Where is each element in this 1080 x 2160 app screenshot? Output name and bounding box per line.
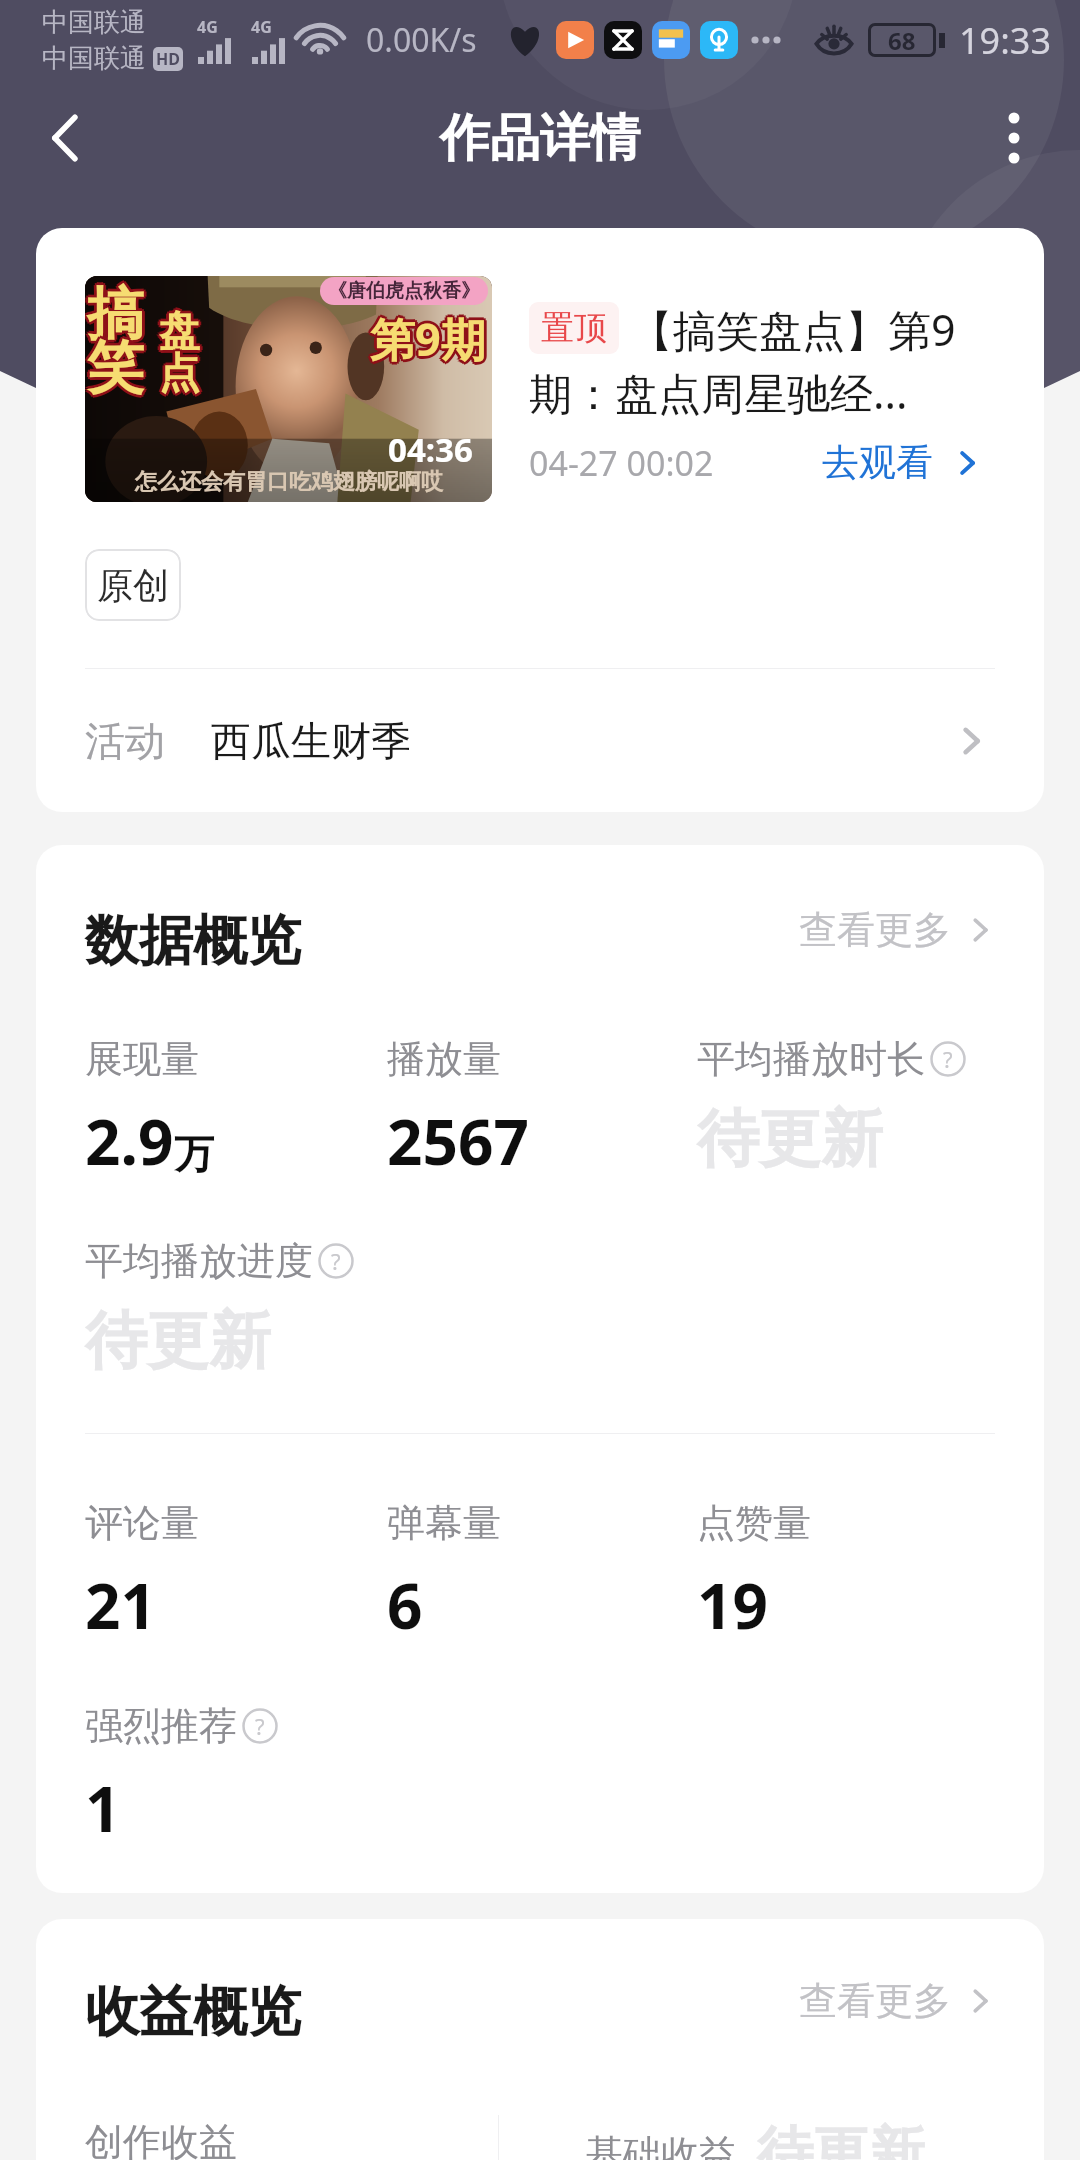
- staticText: 《唐伯虎点秋香》: [328, 279, 480, 303]
- staticText: 第9期: [367, 308, 483, 369]
- staticText: 2.9: [85, 1099, 174, 1183]
- staticText: 笑: [85, 332, 141, 404]
- staticText: 笑: [87, 335, 144, 407]
- staticText: 点: [159, 345, 200, 397]
- staticText: 4G: [197, 16, 218, 38]
- staticText: 中国联通: [42, 6, 146, 39]
- button[interactable]: 去观看: [822, 439, 982, 486]
- staticText: 平均播放进度: [85, 1237, 313, 1285]
- staticText: 笑: [89, 334, 146, 406]
- staticText: 搞: [87, 276, 144, 347]
- staticText: 点: [161, 346, 202, 398]
- staticText: 搞: [89, 280, 146, 352]
- staticText: 第9期: [372, 310, 488, 371]
- staticText: 去观看: [822, 439, 933, 486]
- staticText: 点赞量: [697, 1499, 811, 1547]
- staticText: 原创: [97, 563, 169, 608]
- staticText: 作品详情: [440, 107, 640, 170]
- staticText: 搞: [85, 276, 142, 348]
- staticText: 盘: [156, 306, 197, 358]
- staticText: 搞: [90, 278, 147, 350]
- button[interactable]: 查看更多: [799, 1988, 995, 2036]
- staticText: 平均播放时长: [697, 1035, 925, 1083]
- staticText: 点: [157, 350, 198, 402]
- staticText: 待更新: [757, 2118, 925, 2160]
- staticText: 点: [159, 348, 200, 400]
- button[interactable]: 原创: [85, 549, 181, 621]
- staticText: 笑: [85, 334, 142, 406]
- staticText: 盘: [159, 309, 200, 361]
- staticText: 19: [697, 1563, 768, 1647]
- staticText: 弹幕量: [387, 1499, 501, 1547]
- staticText: 第9期: [373, 308, 489, 369]
- staticText: 盘: [157, 308, 198, 360]
- staticText: 搞: [87, 281, 144, 353]
- staticText: 收益概览: [85, 1978, 301, 2046]
- staticText: 创作收益: [85, 2118, 237, 2160]
- staticText: 点: [156, 348, 197, 400]
- staticText: 【搞笑盘点】第9: [630, 300, 956, 359]
- staticText: 笑: [89, 330, 146, 402]
- staticText: 查看更多: [799, 1977, 951, 2025]
- staticText: 搞: [87, 278, 144, 350]
- staticText: 第9期: [368, 310, 484, 371]
- staticText: 中国联通: [42, 42, 146, 75]
- button[interactable]: Help: [242, 1708, 278, 1744]
- staticText: 搞: [85, 278, 141, 350]
- staticText: 评论量: [85, 1499, 199, 1547]
- staticText: 盘: [159, 306, 200, 358]
- staticText: 1: [85, 1766, 121, 1850]
- staticText: ?: [943, 1044, 953, 1074]
- staticText: 点: [162, 348, 203, 400]
- staticText: 0.00K/s: [366, 18, 477, 62]
- button[interactable]: 查看更多: [799, 917, 995, 965]
- staticText: 播放量: [387, 1035, 501, 1083]
- staticText: 点: [159, 351, 200, 403]
- staticText: 21: [85, 1563, 156, 1647]
- staticText: 查看更多: [799, 906, 951, 954]
- staticText: 2567: [387, 1099, 529, 1183]
- staticText: 盘: [161, 304, 202, 356]
- staticText: 第9期: [370, 311, 486, 372]
- button[interactable]: More options: [956, 80, 1072, 196]
- staticText: 搞: [89, 276, 146, 348]
- staticText: 笑: [85, 330, 142, 402]
- staticText: ?: [331, 1246, 341, 1276]
- staticText: 笑: [87, 332, 144, 404]
- staticText: 19:33: [959, 16, 1052, 65]
- staticText: 期：盘点周星驰经...: [529, 363, 908, 422]
- button[interactable]: 活动: [36, 669, 1044, 812]
- staticText: 点: [161, 350, 202, 402]
- staticText: 04:36: [388, 427, 473, 472]
- staticText: 置顶: [541, 307, 607, 349]
- staticText: 6: [387, 1563, 423, 1647]
- button[interactable]: 置顶: [529, 300, 1007, 422]
- staticText: 笑: [90, 332, 147, 404]
- staticText: 数据概览: [85, 907, 301, 975]
- staticText: 万: [174, 1129, 214, 1179]
- button[interactable]: Video thumbnail: [85, 276, 492, 502]
- staticText: 第9期: [372, 306, 488, 367]
- staticText: 展现量: [85, 1035, 199, 1083]
- button[interactable]: Help: [930, 1041, 966, 1077]
- staticText: 盘: [162, 306, 203, 358]
- staticText: ?: [255, 1711, 265, 1741]
- staticText: 4G: [251, 16, 272, 38]
- staticText: 点: [157, 346, 198, 398]
- staticText: 第9期: [368, 306, 484, 367]
- staticText: 盘: [157, 304, 198, 356]
- staticText: 强烈推荐: [85, 1702, 237, 1750]
- staticText: 盘: [161, 308, 202, 360]
- staticText: 活动: [85, 716, 165, 766]
- staticText: 西瓜生财季: [211, 716, 411, 766]
- staticText: 笑: [87, 329, 144, 401]
- button[interactable]: Back: [8, 80, 124, 196]
- staticText: 第9期: [370, 305, 486, 366]
- staticText: 怎么还会有胃口吃鸡翅膀呢啊哎: [135, 468, 443, 496]
- staticText: 搞: [85, 280, 142, 352]
- button[interactable]: Help: [318, 1243, 354, 1279]
- staticText: 04-27 00:02: [529, 440, 714, 486]
- staticText: 盘: [159, 303, 200, 355]
- staticText: HD: [156, 48, 180, 70]
- staticText: 待更新: [85, 1302, 271, 1380]
